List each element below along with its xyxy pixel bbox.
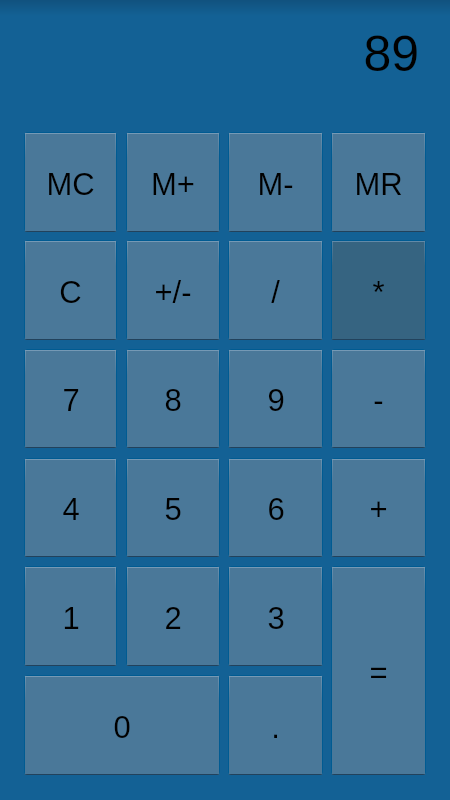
staticText: +/- xyxy=(154,275,192,310)
button[interactable]: C xyxy=(24,240,117,340)
staticText: 6 xyxy=(267,492,285,527)
button[interactable]: MR xyxy=(331,132,426,232)
staticText: M- xyxy=(257,167,294,202)
button[interactable]: M+ xyxy=(126,132,220,232)
staticText: = xyxy=(369,655,388,690)
staticText: MC xyxy=(46,167,95,202)
staticText: 3 xyxy=(267,601,285,636)
button[interactable]: +/- xyxy=(126,240,220,340)
staticText: M+ xyxy=(151,167,195,202)
button[interactable]: 8 xyxy=(126,349,220,448)
button[interactable]: 4 xyxy=(24,458,117,557)
staticText: 4 xyxy=(62,492,80,527)
button[interactable]: 6 xyxy=(228,458,323,557)
button[interactable]: 7 xyxy=(24,349,117,448)
button[interactable]: / xyxy=(228,240,323,340)
staticText: 2 xyxy=(164,601,182,636)
button[interactable]: MC xyxy=(24,132,117,232)
button[interactable]: 5 xyxy=(126,458,220,557)
staticText: . xyxy=(271,710,280,745)
button[interactable]: 0 xyxy=(24,675,220,775)
button[interactable]: = xyxy=(331,566,426,775)
button[interactable]: . xyxy=(228,675,323,775)
staticText: 7 xyxy=(62,383,80,418)
staticText: 8 xyxy=(164,383,182,418)
button[interactable]: M- xyxy=(228,132,323,232)
staticText: / xyxy=(271,275,280,310)
button[interactable]: 2 xyxy=(126,566,220,666)
button[interactable]: 9 xyxy=(228,349,323,448)
button[interactable]: 3 xyxy=(228,566,323,666)
button[interactable]: + xyxy=(331,458,426,557)
button[interactable]: * xyxy=(331,240,426,340)
staticText: 9 xyxy=(267,383,285,418)
staticText: 1 xyxy=(62,601,80,636)
staticText: 89 xyxy=(363,26,419,78)
staticText: C xyxy=(59,275,82,310)
staticText: 0 xyxy=(113,710,131,745)
staticText: MR xyxy=(354,167,403,202)
staticText: - xyxy=(373,383,384,418)
button[interactable]: - xyxy=(331,349,426,448)
staticText: 5 xyxy=(164,492,182,527)
button[interactable]: 1 xyxy=(24,566,117,666)
staticText: * xyxy=(372,275,385,310)
staticText: + xyxy=(369,492,388,527)
